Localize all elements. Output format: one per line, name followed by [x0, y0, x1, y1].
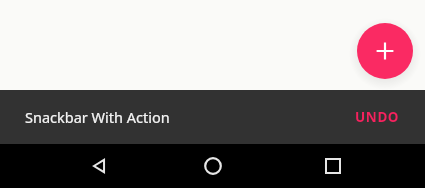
button[interactable]: Recent apps — [311, 144, 355, 188]
button[interactable]: Home — [191, 144, 235, 188]
staticText: Snackbar With Action — [25, 107, 170, 127]
button[interactable]: Back — [77, 144, 121, 188]
button[interactable]: UNDO — [355, 108, 400, 126]
button[interactable]: Add — [357, 23, 413, 79]
staticText: UNDO — [355, 108, 400, 126]
button[interactable]: Snackbar With Action — [0, 90, 425, 144]
